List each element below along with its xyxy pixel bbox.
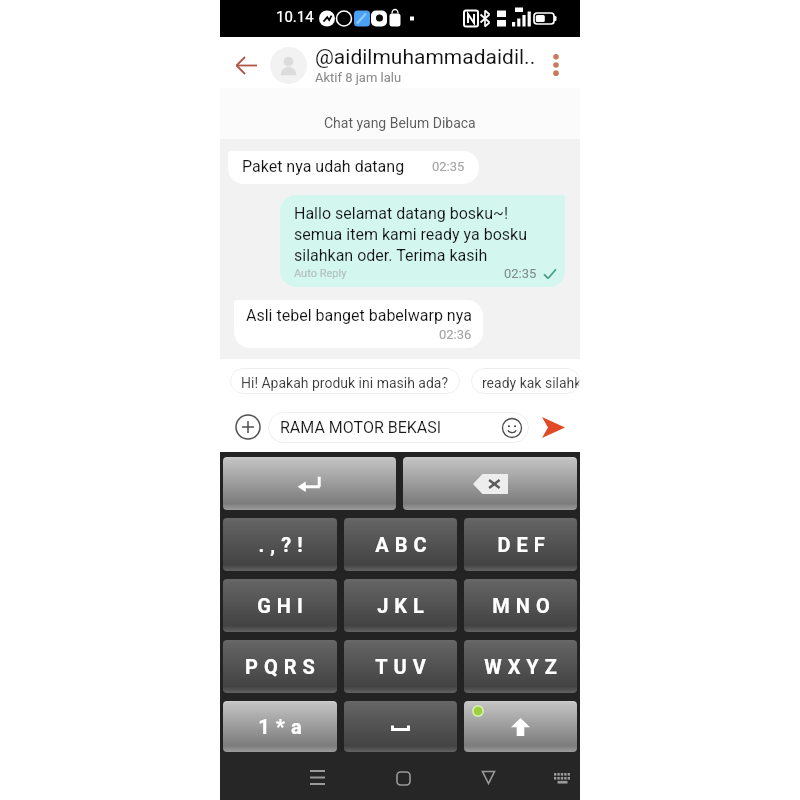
staticText: Hi! Apakah produk ini masih ada? [241, 375, 449, 391]
staticText: Paket nya udah datang [242, 157, 405, 176]
staticText: ABC [375, 533, 433, 556]
button[interactable]: More options [539, 48, 573, 82]
button[interactable]: Paket nya udah datang [228, 151, 479, 184]
staticText: TUV [375, 655, 432, 678]
staticText: WXYZ [484, 655, 563, 678]
button[interactable]: JKL [344, 579, 457, 632]
button[interactable]: Back [228, 47, 264, 83]
staticText: ready kak silahkan [482, 375, 580, 391]
button[interactable]: ready kak silahkan [471, 368, 580, 394]
staticText: DEF [497, 533, 551, 556]
staticText: 1*a [258, 715, 308, 738]
button[interactable]: DEF [464, 518, 577, 571]
button[interactable]: 1*a [223, 701, 337, 752]
staticText: .,?! [258, 533, 309, 556]
button[interactable]: Send [536, 410, 570, 444]
button[interactable]: .,?! [223, 518, 337, 571]
button[interactable]: MNO [464, 579, 577, 632]
staticText: MNO [492, 594, 556, 617]
button[interactable]: Menu [297, 757, 337, 797]
staticText: PQRS [245, 655, 321, 678]
staticText: Asli tebel banget babelwarp nya [246, 306, 472, 325]
staticText: GHI [257, 594, 309, 617]
staticText: Auto Reply [294, 267, 347, 280]
button[interactable]: Keyboard [542, 758, 582, 798]
button[interactable]: WXYZ [464, 640, 577, 693]
button[interactable]: TUV [344, 640, 457, 693]
staticText: 10.14 [276, 8, 314, 26]
staticText: RAMA MOTOR BEKASI [280, 418, 442, 437]
staticText: @aidilmuhammadaidil... [315, 45, 539, 70]
button[interactable]: Home [383, 758, 423, 798]
staticText: Chat yang Belum Dibaca [324, 115, 476, 131]
staticText: 02:35 [432, 159, 465, 174]
button[interactable]: RAMA MOTOR BEKASI [268, 412, 529, 443]
button[interactable]: Hi! Apakah produk ini masih ada? [230, 368, 460, 394]
button[interactable]: GHI [223, 579, 337, 632]
button[interactable]: PQRS [223, 640, 337, 693]
staticText: JKL [377, 594, 430, 617]
button[interactable]: ABC [344, 518, 457, 571]
button[interactable]: Back [468, 757, 508, 797]
button[interactable] [464, 701, 577, 752]
staticText: Aktif 8 jam lalu [315, 70, 402, 85]
button[interactable] [344, 701, 457, 752]
button[interactable]: Asli tebel banget babelwarp nya [234, 300, 483, 348]
button[interactable]: Hallo selamat datang bosku~! semua item … [280, 195, 565, 287]
button[interactable] [223, 457, 396, 510]
staticText: Hallo selamat datang bosku~! semua item … [294, 204, 528, 265]
staticText: 02:35 [504, 266, 537, 281]
staticText: 02:36 [439, 327, 472, 342]
button[interactable] [403, 457, 577, 510]
button[interactable]: Add attachment [233, 412, 263, 442]
